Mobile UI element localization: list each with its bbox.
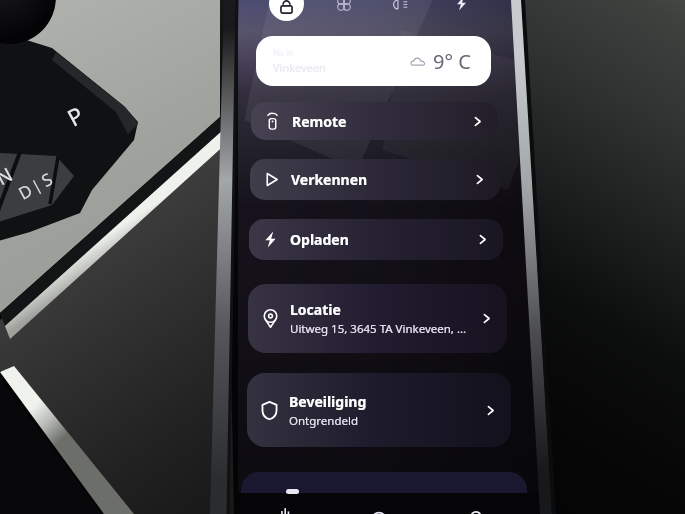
staticText: | bbox=[28, 174, 45, 196]
staticText: S bbox=[37, 167, 57, 192]
staticText: N bbox=[0, 161, 17, 191]
button[interactable]: Account bbox=[466, 505, 486, 514]
button[interactable]: Locatie bbox=[248, 284, 507, 353]
button[interactable]: Charging bbox=[454, 0, 469, 11]
staticText: Opladen bbox=[290, 230, 349, 249]
staticText: D bbox=[14, 178, 37, 205]
staticText: Beveiliging bbox=[289, 392, 367, 411]
button[interactable]: Beveiliging bbox=[247, 373, 511, 447]
staticText: Verkennen bbox=[291, 170, 368, 189]
staticText: P bbox=[61, 98, 88, 132]
button[interactable]: Vehicle bbox=[278, 506, 296, 514]
button[interactable]: Lights bbox=[393, 0, 408, 12]
button[interactable]: Charging stations bbox=[369, 505, 389, 514]
button[interactable]: Remote bbox=[251, 102, 498, 140]
staticText: Vinkeveen bbox=[273, 60, 326, 75]
staticText: Nu in bbox=[273, 47, 294, 58]
button[interactable]: Lock vehicle bbox=[269, 0, 304, 21]
button[interactable] bbox=[241, 472, 527, 498]
staticText: Remote bbox=[292, 112, 347, 131]
button[interactable]: Nu in bbox=[256, 36, 491, 86]
staticText: Ontgrendeld bbox=[289, 413, 359, 429]
staticText: Locatie bbox=[290, 300, 341, 319]
staticText: Uitweg 15, 3645 TA Vinkeveen, … bbox=[290, 321, 467, 337]
button[interactable]: Opladen bbox=[249, 219, 503, 260]
button[interactable]: Verkennen bbox=[250, 159, 500, 200]
staticText: 9° C bbox=[433, 48, 471, 75]
button[interactable]: Climate bbox=[337, 0, 351, 11]
